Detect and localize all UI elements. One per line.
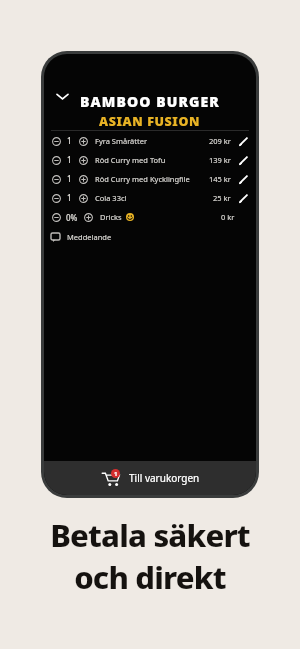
button[interactable]: Meddelande <box>44 227 256 247</box>
staticText: Betala säkert <box>50 514 250 556</box>
staticText: 145 kr <box>209 174 231 184</box>
button[interactable]: Edit <box>237 192 249 204</box>
button[interactable]: Decrease <box>51 193 61 203</box>
staticText: 1 <box>67 192 72 203</box>
button[interactable]: Decrease <box>51 212 61 222</box>
staticText: Röd Curry med Tofu <box>95 155 166 165</box>
button[interactable]: Increase <box>83 212 93 222</box>
button[interactable]: Edit <box>237 135 249 147</box>
button[interactable]: Decrease <box>44 169 256 188</box>
button[interactable]: Decrease <box>44 150 256 169</box>
staticText: 209 kr <box>209 136 231 146</box>
staticText: och direkt <box>74 556 226 598</box>
staticText: 1 <box>67 173 72 184</box>
button[interactable]: Decrease <box>44 131 256 150</box>
staticText: 1 <box>67 154 72 165</box>
button[interactable]: Decrease <box>51 155 61 165</box>
staticText: Dricks <box>100 212 122 222</box>
button[interactable]: Edit <box>237 154 249 166</box>
button[interactable]: Decrease <box>44 188 256 207</box>
button[interactable]: Collapse <box>52 86 72 106</box>
staticText: 139 kr <box>209 155 231 165</box>
staticText: 1 <box>67 135 72 146</box>
button[interactable]: 1 <box>44 461 256 495</box>
button[interactable]: Decrease <box>51 136 61 146</box>
button[interactable]: Increase <box>78 155 88 165</box>
staticText: 0 kr <box>221 212 235 222</box>
button[interactable]: Decrease <box>44 207 256 227</box>
staticText: 1 <box>114 470 118 478</box>
button[interactable]: Increase <box>78 193 88 203</box>
staticText: 25 kr <box>213 193 231 203</box>
button[interactable]: Edit <box>237 173 249 185</box>
staticText: Meddelande <box>67 232 112 242</box>
button[interactable]: Increase <box>78 136 88 146</box>
staticText: Cola 33cl <box>95 193 127 203</box>
staticText: Fyra Smårätter <box>95 136 148 146</box>
staticText: Röd Curry med Kycklingfile <box>95 174 190 184</box>
staticText: BAMBOO BURGER <box>80 92 220 111</box>
button[interactable]: Increase <box>78 174 88 184</box>
button[interactable]: Decrease <box>51 174 61 184</box>
staticText: Till varukorgen <box>129 471 200 485</box>
staticText: ASIAN FUSION <box>99 113 201 130</box>
staticText: 0% <box>66 212 78 223</box>
